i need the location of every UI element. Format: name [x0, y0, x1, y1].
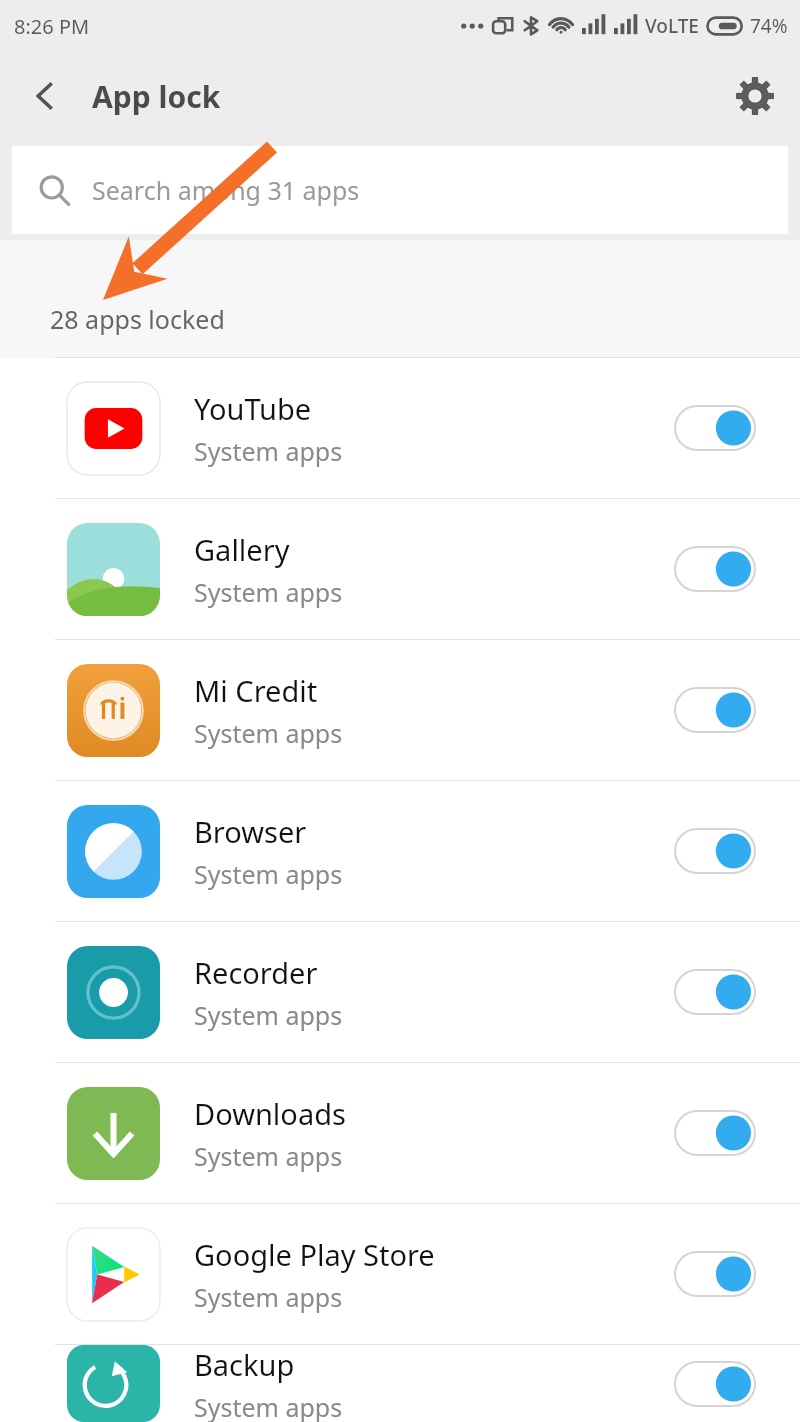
staticText: Gallery [194, 530, 290, 569]
staticText: Recorder [194, 953, 318, 992]
button[interactable]: Toggle lock for Recorder [675, 970, 755, 1014]
button[interactable]: Recorder [0, 922, 800, 1062]
staticText: Downloads [194, 1094, 346, 1133]
staticText: System apps [194, 998, 343, 1032]
button[interactable]: Toggle lock for Backup [675, 1362, 755, 1406]
button[interactable]: Toggle lock for Browser [675, 829, 755, 873]
button[interactable]: Toggle lock for YouTube [675, 406, 755, 450]
staticText: 74% [750, 13, 788, 39]
staticText: System apps [194, 716, 343, 750]
button[interactable]: Backup [0, 1345, 800, 1422]
button[interactable]: Toggle lock for Google Play Store [675, 1252, 755, 1296]
button[interactable]: Settings [724, 65, 786, 127]
button[interactable]: Toggle lock for Gallery [675, 547, 755, 591]
staticText: System apps [194, 575, 343, 609]
staticText: System apps [194, 1390, 343, 1422]
staticText: Google Play Store [194, 1235, 435, 1274]
button[interactable]: Toggle lock for Mi Credit [675, 688, 755, 732]
button[interactable]: Search among 31 apps [12, 146, 788, 234]
button[interactable]: Mi Credit [0, 640, 800, 780]
staticText: System apps [194, 857, 343, 891]
button[interactable]: Toggle lock for Downloads [675, 1111, 755, 1155]
button[interactable]: Back [14, 65, 76, 127]
staticText: System apps [194, 434, 343, 468]
button[interactable]: Browser [0, 781, 800, 921]
staticText: Backup [194, 1345, 295, 1384]
button[interactable]: Google Play Store [0, 1204, 800, 1344]
button[interactable]: YouTube [0, 358, 800, 498]
button[interactable]: Downloads [0, 1063, 800, 1203]
staticText: 28 apps locked [50, 302, 225, 336]
staticText: YouTube [194, 389, 312, 428]
staticText: System apps [194, 1280, 343, 1314]
staticText: Browser [194, 812, 307, 851]
button[interactable]: Gallery [0, 499, 800, 639]
staticText: System apps [194, 1139, 343, 1173]
staticText: VoLTE [645, 13, 699, 39]
staticText: App lock [92, 76, 221, 117]
staticText: 8:26 PM [14, 13, 90, 40]
staticText: Search among 31 apps [92, 173, 360, 207]
staticText: Mi Credit [194, 671, 318, 710]
